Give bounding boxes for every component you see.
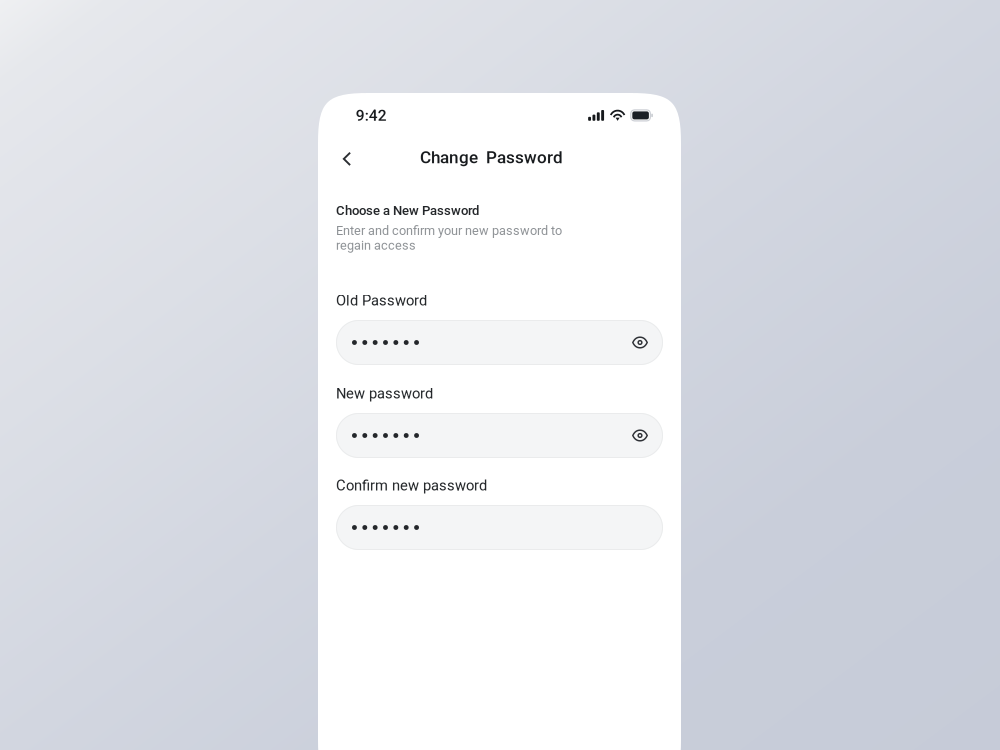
staticText: New password (336, 385, 433, 402)
button[interactable] (336, 320, 663, 365)
button[interactable] (336, 413, 663, 458)
staticText: Old Password (336, 292, 427, 309)
staticText: Change Password (420, 147, 563, 167)
button[interactable]: Back (332, 144, 362, 174)
staticText: Confirm new password (336, 477, 487, 494)
staticText: Enter and confirm your new password to r… (336, 223, 562, 253)
button[interactable] (336, 505, 663, 550)
staticText: Choose a New Password (336, 203, 479, 218)
staticText: 9:42 (356, 106, 387, 124)
